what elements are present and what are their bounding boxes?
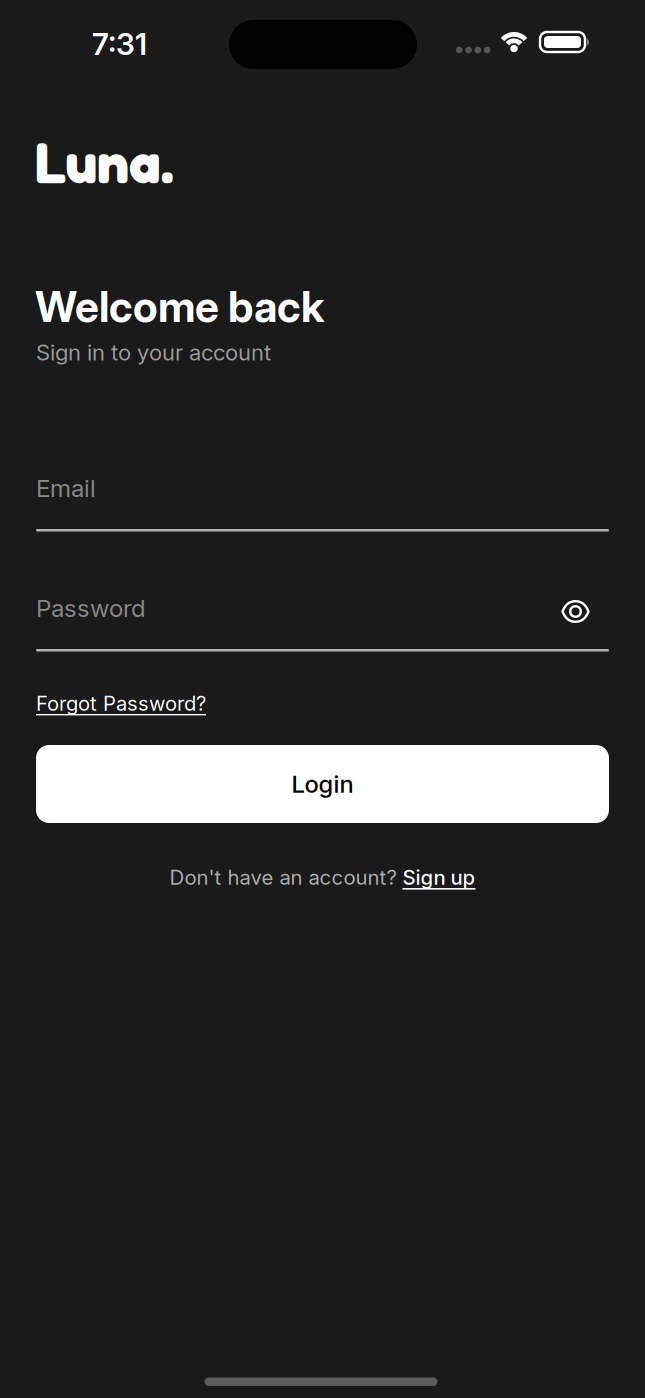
staticText: Welcome back — [35, 281, 324, 332]
staticText: Forgot Password? — [36, 691, 206, 715]
button[interactable]: Forgot Password? — [36, 691, 206, 715]
button[interactable]: Password — [36, 593, 609, 651]
button[interactable]: Login — [36, 745, 609, 823]
staticText: Sign in to your account — [36, 339, 271, 366]
staticText: Luna. — [34, 127, 173, 196]
button[interactable] — [561, 599, 590, 624]
staticText: Email — [36, 473, 96, 503]
button[interactable]: Don't have an account? — [169, 865, 475, 890]
staticText: 7:31 — [92, 26, 147, 62]
staticText: Login — [291, 769, 353, 798]
staticText: Sign up — [402, 865, 475, 890]
staticText: Password — [36, 593, 146, 623]
button[interactable]: Email — [36, 473, 609, 531]
staticText: Don't have an account? — [169, 865, 402, 890]
